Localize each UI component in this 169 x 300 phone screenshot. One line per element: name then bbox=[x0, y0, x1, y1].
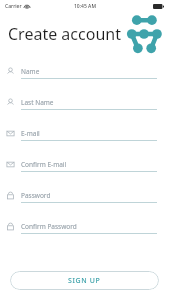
staticText: Confirm E-mail bbox=[21, 160, 67, 169]
button[interactable]: Confirm Password bbox=[0, 219, 169, 250]
button[interactable]: Last Name bbox=[0, 95, 169, 126]
other: App logo bbox=[126, 13, 162, 55]
staticText: Confirm Password bbox=[21, 222, 77, 231]
staticText: SIGN UP bbox=[68, 276, 101, 286]
button[interactable]: SIGN UP bbox=[10, 271, 159, 290]
button[interactable]: E-mail bbox=[0, 126, 169, 157]
staticText: Name bbox=[21, 67, 40, 76]
button[interactable]: Confirm E-mail bbox=[0, 157, 169, 188]
staticText: Carrier bbox=[5, 3, 22, 10]
button[interactable]: Name bbox=[0, 64, 169, 95]
staticText: Last Name bbox=[21, 98, 54, 107]
staticText: Password bbox=[21, 191, 51, 200]
staticText: E-mail bbox=[21, 129, 40, 138]
staticText: 10:45 AM bbox=[74, 3, 96, 10]
button[interactable]: Password bbox=[0, 188, 169, 219]
staticText: Create account bbox=[8, 23, 121, 45]
